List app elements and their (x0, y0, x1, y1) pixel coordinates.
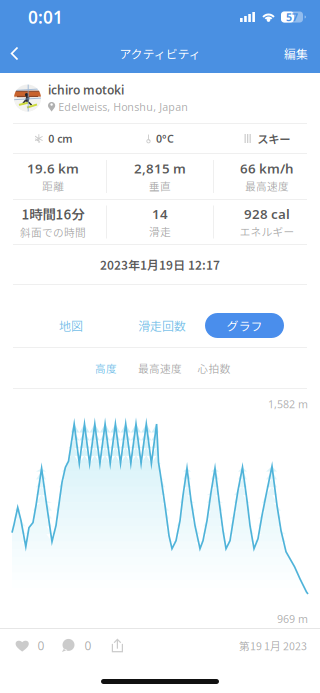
staticText: 14 (152, 205, 168, 223)
button[interactable]: 編集 (266, 35, 320, 71)
button[interactable]: 0 (0, 629, 53, 662)
staticText: 928 cal (244, 205, 290, 223)
staticText: 57 (286, 10, 298, 24)
staticText: 最高速度 (245, 178, 289, 193)
staticText: 0 (84, 637, 91, 653)
staticText: 滑走回数 (138, 317, 186, 334)
staticText: 0:01 (28, 5, 63, 28)
button[interactable]: 最高速度 (133, 357, 187, 379)
staticText: 2,815 m (134, 159, 186, 177)
staticText: 19.6 km (27, 159, 79, 177)
button[interactable]: 高度 (79, 357, 133, 379)
staticText: スキー (257, 130, 290, 147)
staticText: アクティビティ (119, 45, 200, 62)
staticText: 斜面での時間 (20, 224, 86, 240)
button[interactable]: Share (103, 629, 135, 662)
staticText: 滑走 (149, 224, 171, 239)
button[interactable]: 滑走回数 (107, 313, 205, 338)
staticText: 最高速度 (138, 360, 182, 376)
staticText: 距離 (42, 178, 64, 193)
staticText: 0°C (156, 131, 174, 146)
staticText: 0 cm (48, 131, 72, 146)
staticText: 969 m (277, 612, 308, 626)
staticText: 垂直 (149, 178, 171, 193)
button[interactable]: グラフ (205, 313, 284, 338)
staticText: 2023年1月19日 12:17 (100, 256, 220, 273)
staticText: 66 km/h (240, 159, 294, 177)
staticText: グラフ (226, 317, 262, 334)
button[interactable]: 心拍数 (187, 357, 241, 379)
button[interactable]: Back (0, 35, 39, 71)
button[interactable]: 0 (53, 629, 103, 662)
button[interactable]: ichiro motoki (0, 73, 320, 123)
staticText: 地図 (59, 317, 83, 334)
staticText: 第19 1月 2023 (239, 638, 307, 653)
button[interactable]: 地図 (35, 313, 107, 338)
staticText: Edelweiss, Honshu, Japan (58, 100, 188, 114)
staticText: エネルギー (239, 224, 294, 239)
staticText: 心拍数 (197, 360, 230, 376)
staticText: 1,582 m (268, 397, 308, 411)
staticText: 編集 (284, 45, 308, 62)
staticText: 1時間16分 (21, 204, 84, 223)
staticText: 0 (37, 637, 44, 653)
staticText: ichiro motoki (48, 82, 124, 98)
staticText: 高度 (95, 360, 117, 376)
